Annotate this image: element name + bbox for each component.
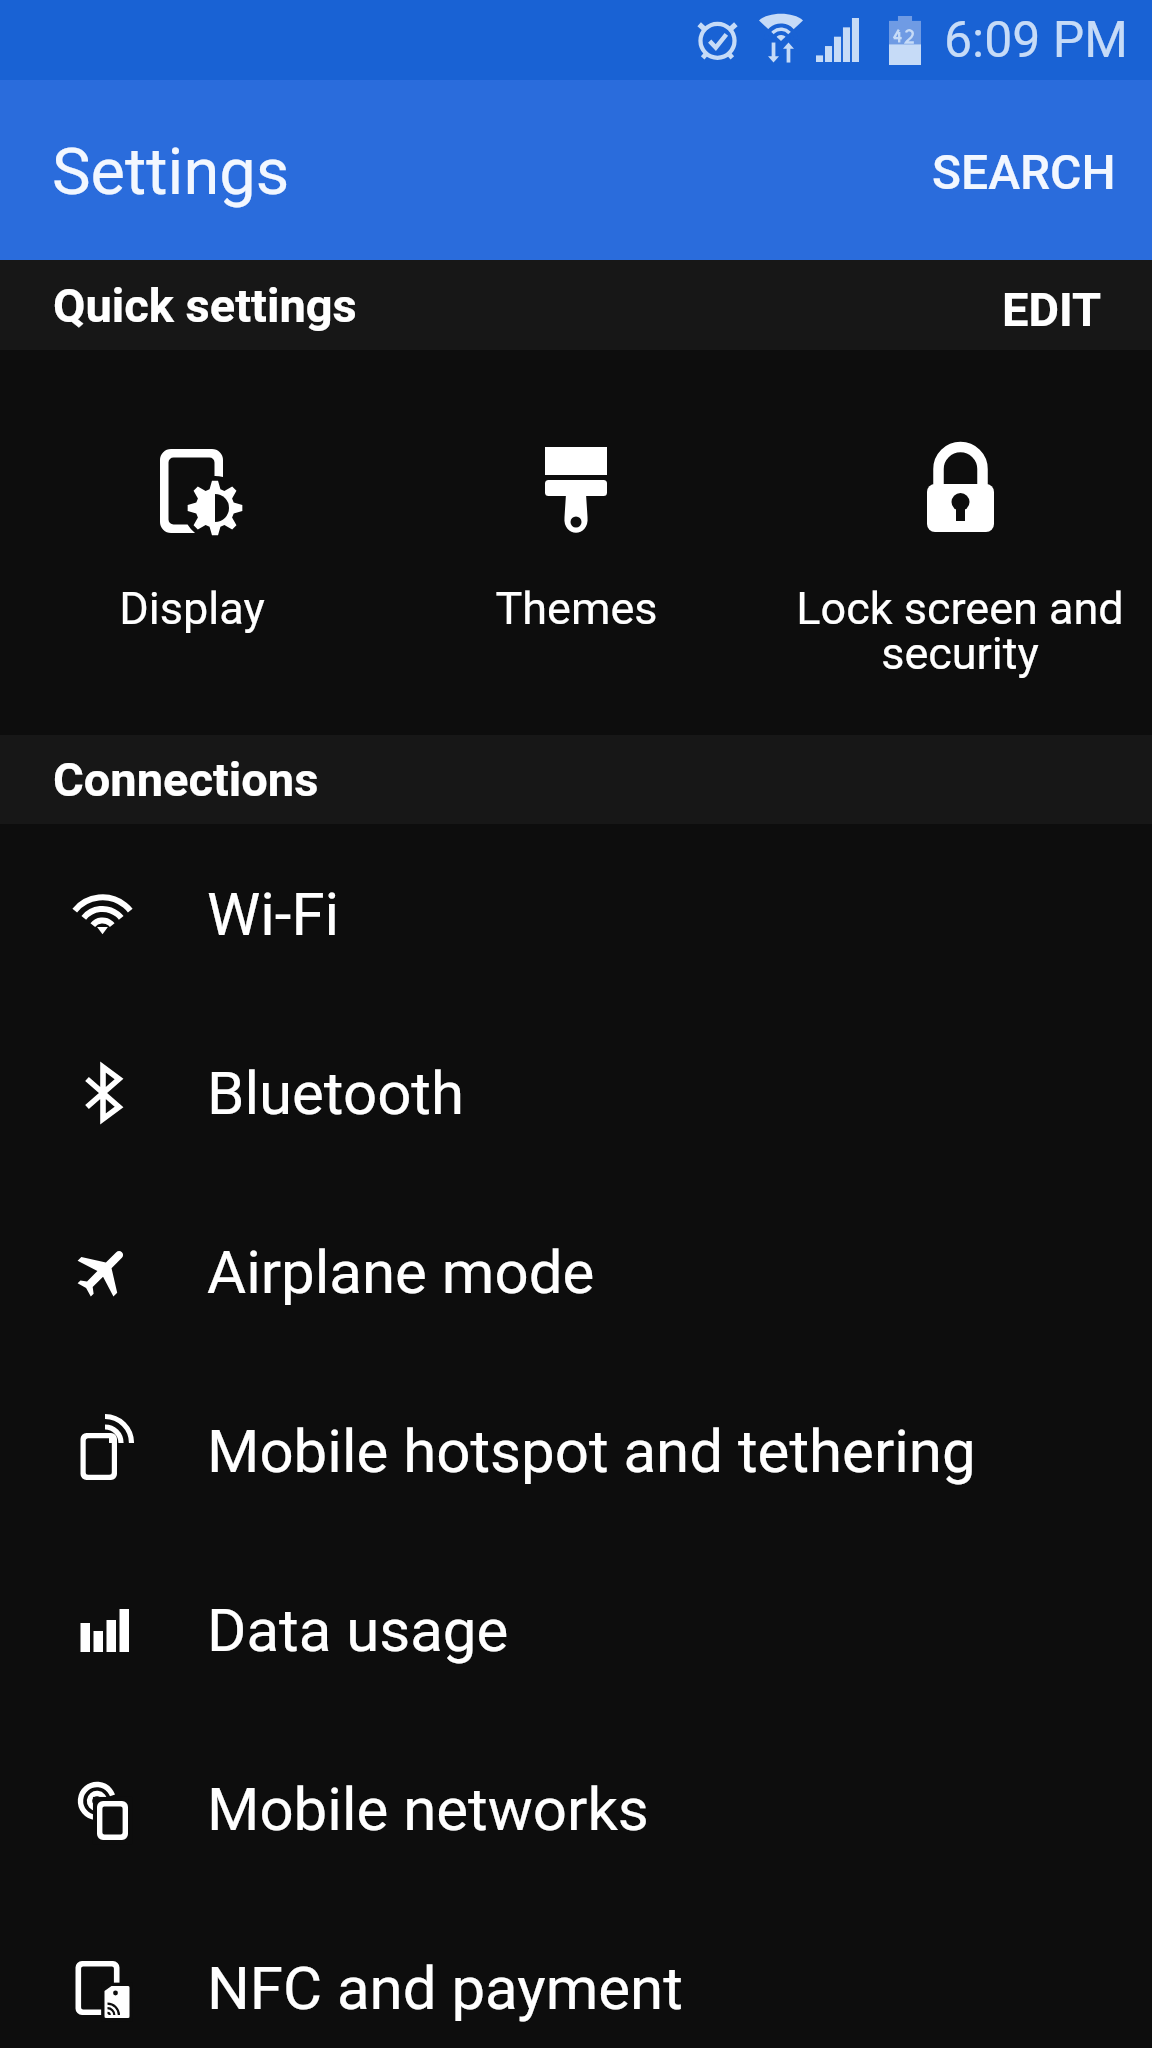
staticText: Mobile hotspot and tethering bbox=[207, 1416, 976, 1486]
button[interactable]: Mobile hotspot and tethering bbox=[0, 1361, 1152, 1540]
button[interactable]: Wi-Fi bbox=[0, 824, 1152, 1003]
staticText: Airplane mode bbox=[207, 1237, 595, 1307]
staticText: NFC and payment bbox=[207, 1953, 683, 2023]
staticText: SEARCH bbox=[932, 144, 1116, 200]
staticText: Settings bbox=[52, 134, 290, 210]
staticText: Wi-Fi bbox=[207, 879, 340, 949]
button[interactable]: NFC and payment bbox=[0, 1898, 1152, 2048]
staticText: Connections bbox=[53, 752, 319, 807]
button[interactable]: Themes bbox=[384, 350, 768, 735]
staticText: Themes bbox=[495, 582, 658, 635]
staticText: Lock screen and security bbox=[776, 582, 1144, 680]
staticText: Mobile networks bbox=[207, 1774, 649, 1844]
button[interactable]: SEARCH bbox=[892, 102, 1152, 238]
staticText: 6:09 PM bbox=[944, 11, 1129, 70]
staticText: EDIT bbox=[1002, 282, 1102, 328]
button[interactable]: Bluetooth bbox=[0, 1003, 1152, 1182]
button[interactable]: Lock screen and security bbox=[768, 350, 1152, 735]
staticText: Data usage bbox=[207, 1595, 509, 1665]
button[interactable]: Data usage bbox=[0, 1540, 1152, 1719]
button[interactable]: Display bbox=[0, 350, 384, 735]
staticText: Quick settings bbox=[53, 278, 357, 333]
staticText: Display bbox=[119, 582, 265, 635]
button[interactable]: Airplane mode bbox=[0, 1182, 1152, 1361]
button[interactable]: Mobile networks bbox=[0, 1719, 1152, 1898]
staticText: Bluetooth bbox=[207, 1058, 465, 1128]
button[interactable]: EDIT bbox=[952, 260, 1152, 350]
other: Alarm, Wi-Fi, mobile signal and battery … bbox=[0, 0, 1152, 80]
